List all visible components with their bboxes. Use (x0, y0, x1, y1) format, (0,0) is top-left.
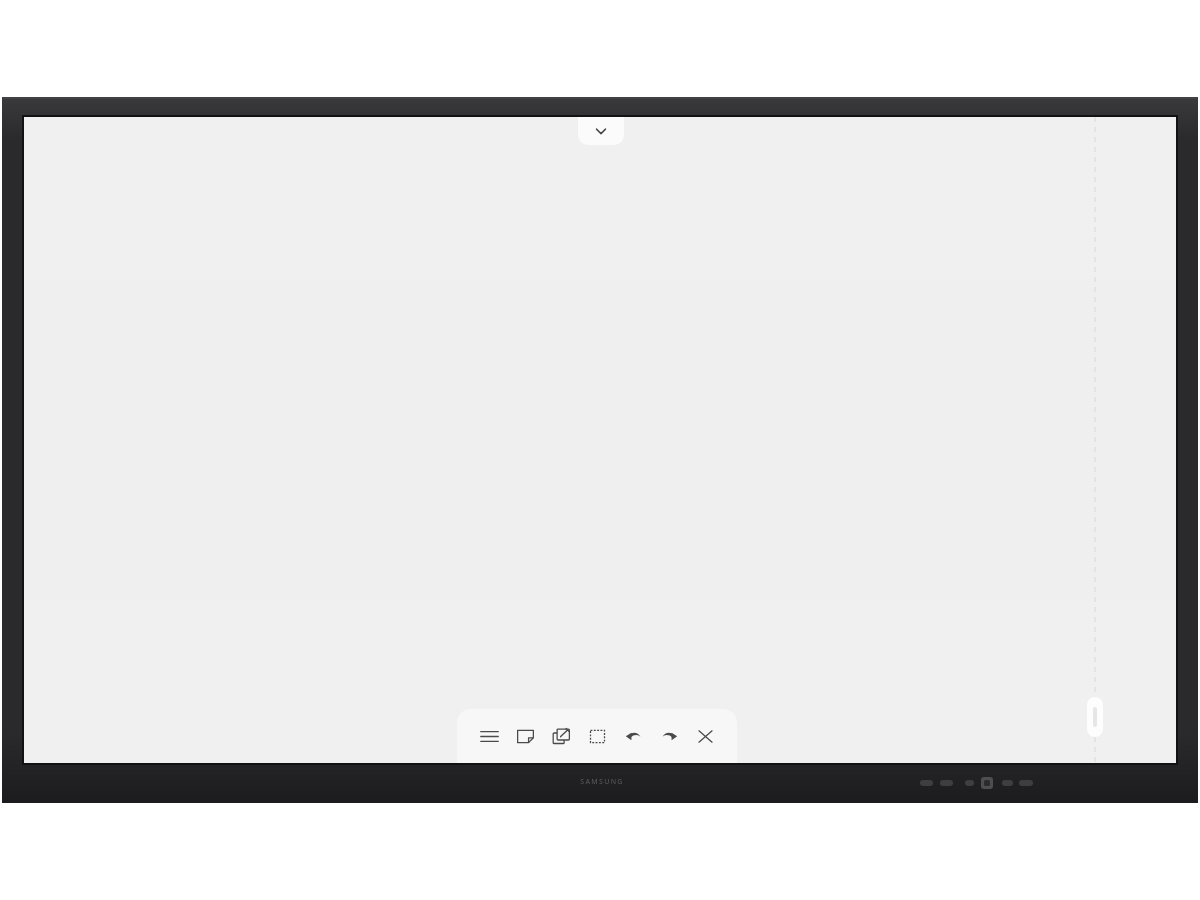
button[interactable]: New note (507, 714, 543, 758)
button[interactable]: Power (981, 777, 993, 789)
staticText: SAMSUNG (580, 777, 624, 787)
button[interactable]: Edit pages (543, 714, 579, 758)
button[interactable]: Close (687, 714, 723, 758)
button[interactable]: Page handle (1087, 697, 1103, 737)
button[interactable]: Show menu (578, 117, 624, 145)
button[interactable]: Redo (651, 714, 687, 758)
button[interactable]: Menu (471, 714, 507, 758)
button[interactable]: Select (579, 714, 615, 758)
button[interactable]: Undo (615, 714, 651, 758)
